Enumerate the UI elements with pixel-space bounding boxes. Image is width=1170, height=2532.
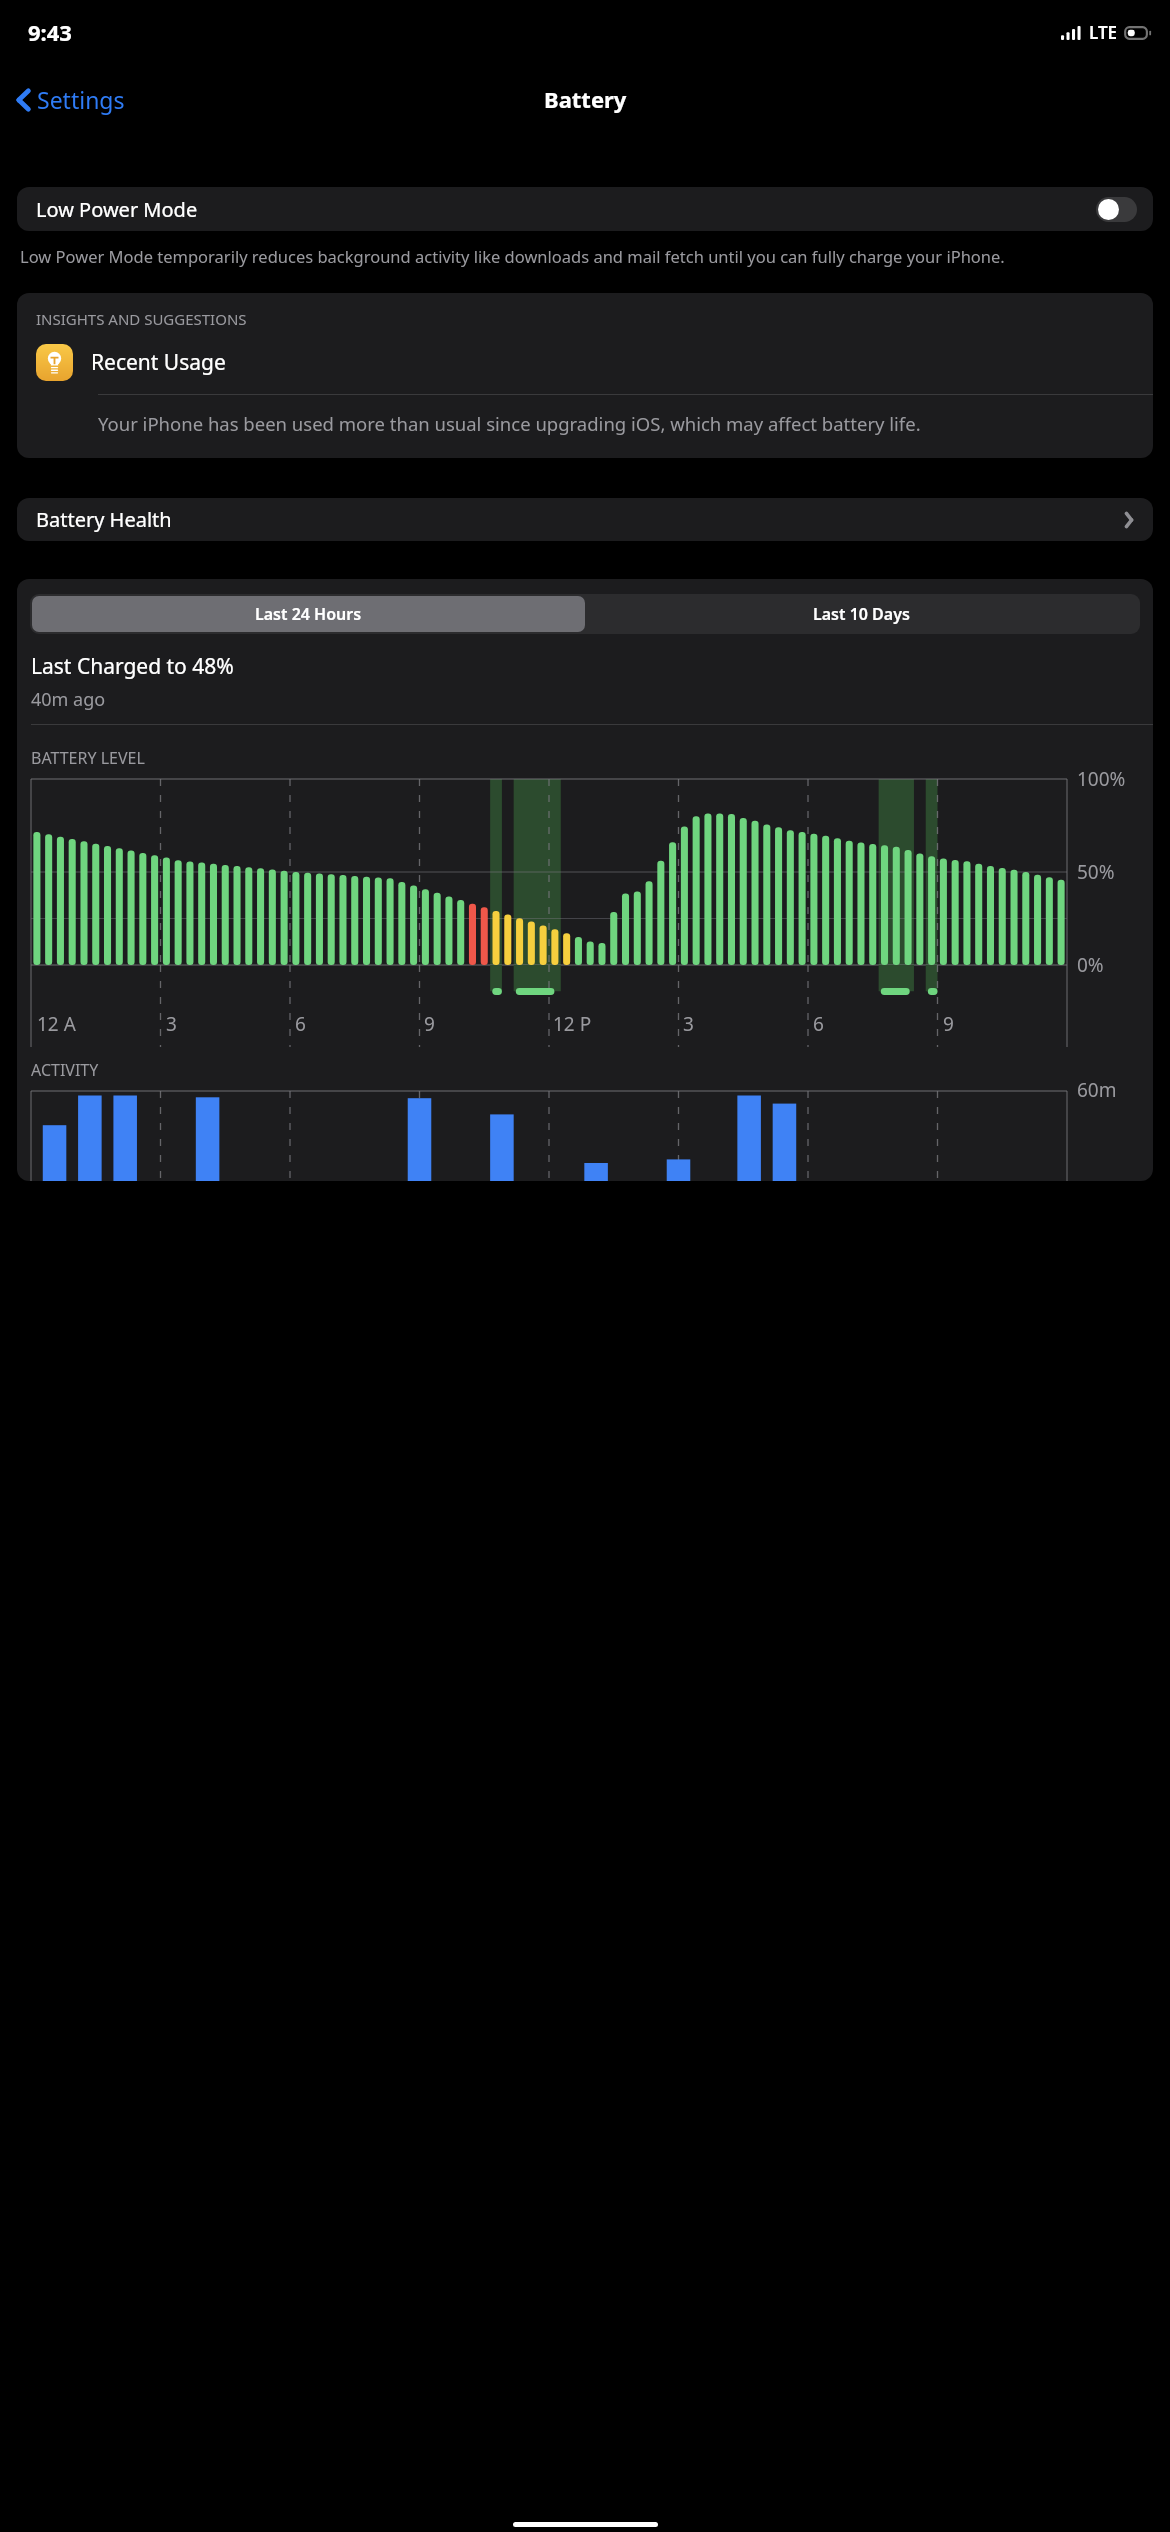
- button[interactable]: INSIGHTS AND SUGGESTIONS: [17, 293, 1153, 458]
- staticText: Last Charged to 48%: [31, 652, 234, 681]
- staticText: Last 10 Days: [813, 603, 910, 625]
- button[interactable]: Battery Health: [17, 498, 1153, 541]
- staticText: INSIGHTS AND SUGGESTIONS: [36, 309, 247, 329]
- staticText: Low Power Mode: [36, 196, 1096, 223]
- staticText: Last 24 Hours: [255, 603, 362, 625]
- staticText: 6: [295, 1011, 306, 1037]
- staticText: 3: [166, 1011, 177, 1037]
- staticText: 3: [683, 1011, 694, 1037]
- button[interactable]: Low Power Mode: [17, 187, 1153, 231]
- staticText: 0%: [1077, 952, 1104, 978]
- staticText: 9: [943, 1011, 954, 1037]
- staticText: LTE: [1089, 21, 1118, 44]
- staticText: 100%: [1077, 766, 1126, 792]
- staticText: Recent Usage: [91, 348, 226, 377]
- staticText: BATTERY LEVEL: [31, 747, 145, 769]
- staticText: 60m: [1077, 1077, 1117, 1103]
- other: Back: [14, 86, 30, 114]
- staticText: 12 P: [553, 1011, 592, 1037]
- staticText: Your iPhone has been used more than usua…: [98, 411, 921, 436]
- button[interactable]: Back: [0, 76, 137, 123]
- staticText: Battery Health: [36, 506, 1124, 533]
- staticText: 40m ago: [31, 687, 106, 712]
- staticText: ACTIVITY: [31, 1059, 99, 1081]
- button[interactable]: Last 24 Hours: [32, 596, 585, 632]
- staticText: Settings: [37, 84, 125, 115]
- staticText: 12 A: [37, 1011, 76, 1037]
- staticText: 9: [424, 1011, 435, 1037]
- staticText: 6: [813, 1011, 824, 1037]
- button[interactable]: Last 10 Days: [585, 596, 1138, 632]
- staticText: Battery: [544, 84, 627, 114]
- staticText: Low Power Mode temporarily reduces backg…: [20, 245, 1150, 267]
- staticText: 50%: [1077, 859, 1115, 885]
- staticText: 9:43: [28, 17, 72, 47]
